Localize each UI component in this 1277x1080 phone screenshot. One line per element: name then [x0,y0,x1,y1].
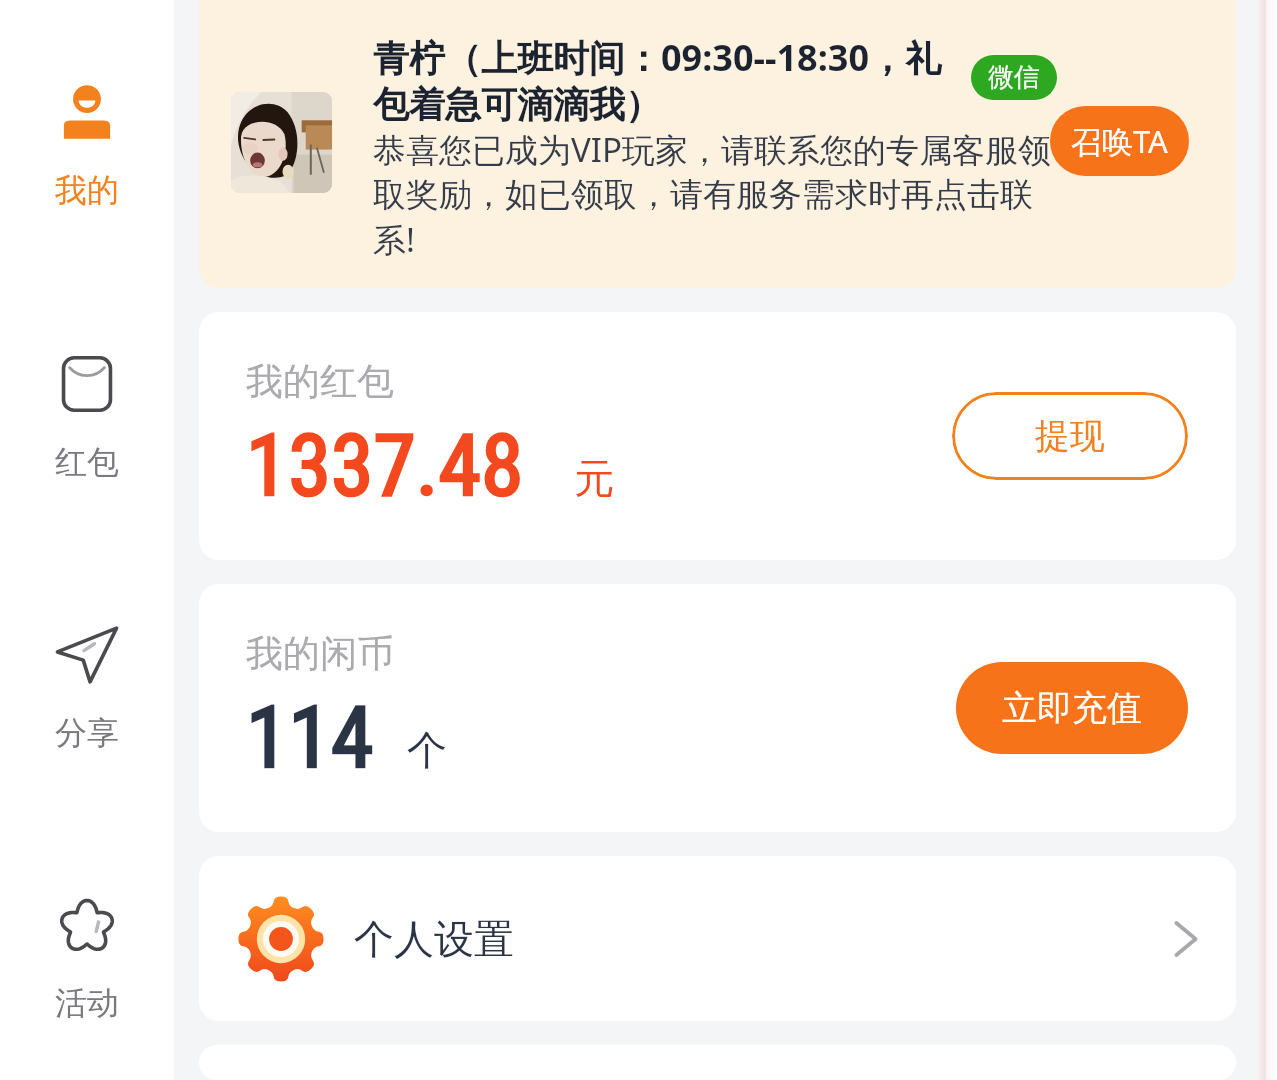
button[interactable]: 召唤TA [1050,106,1189,176]
staticText: 我的 [55,170,119,210]
staticText: 元 [574,453,614,503]
staticText: 活动 [55,983,119,1023]
staticText: 个 [407,725,447,775]
other: Open personal settings [1162,919,1202,959]
other: Red packet [53,350,121,418]
other: Mine [53,78,121,146]
button[interactable]: 提现 [952,392,1188,480]
other: Activity [53,891,121,959]
staticText: 恭喜您已成为VIP玩家，请联系您的专属客服领取奖励，如已领取，请有服务需求时再点… [373,127,1073,261]
staticText: 青柠（上班时间：09:30--18:30，礼 [373,33,942,82]
button[interactable]: Red packet [0,350,174,500]
button[interactable]: 微信 [971,55,1057,100]
staticText: 召唤TA [1071,120,1168,162]
staticText: 立即充值 [1002,686,1142,730]
staticText: 提现 [1035,414,1105,458]
staticText: 我的闲币 [246,630,394,677]
button[interactable]: 立即充值 [956,662,1188,754]
staticText: 红包 [55,442,119,482]
staticText: 分享 [55,713,119,753]
button[interactable]: Mine [0,78,174,228]
staticText: 1337.48 [246,415,524,516]
button[interactable]: Share [0,621,174,771]
staticText: 我的红包 [246,358,394,405]
button[interactable]: Activity [0,891,174,1041]
staticText: 个人设置 [354,914,514,964]
button[interactable]: 个人设置 [199,856,1236,1021]
staticText: 微信 [988,61,1040,94]
staticText: 包着急可滴滴我） [373,82,661,127]
staticText: 114 [246,687,374,788]
other: Share [53,621,121,689]
